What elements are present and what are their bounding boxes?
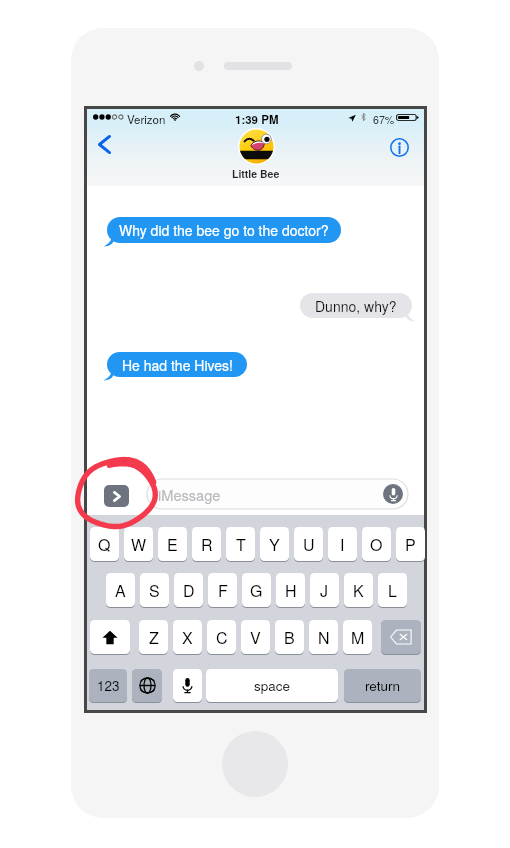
- button[interactable]: E: [158, 527, 187, 561]
- staticText: F: [218, 579, 228, 602]
- button[interactable]: N: [309, 620, 338, 654]
- button[interactable]: Send: [104, 485, 129, 507]
- staticText: U: [303, 533, 315, 556]
- button[interactable]: Q: [90, 527, 119, 561]
- staticText: Dunno, why?: [315, 296, 397, 316]
- button[interactable]: D: [174, 573, 203, 607]
- staticText: S: [149, 579, 160, 602]
- button[interactable]: Home: [222, 731, 288, 797]
- button[interactable]: J: [310, 573, 339, 607]
- staticText: space: [254, 676, 291, 695]
- button[interactable]: O: [362, 527, 391, 561]
- staticText: D: [183, 579, 195, 602]
- staticText: H: [285, 579, 297, 602]
- button[interactable]: T: [226, 527, 255, 561]
- button[interactable]: F: [208, 573, 237, 607]
- staticText: T: [236, 533, 246, 556]
- button[interactable]: H: [276, 573, 305, 607]
- button[interactable]: iMessage: [147, 479, 408, 509]
- button[interactable]: W: [124, 527, 153, 561]
- staticText: L: [388, 579, 397, 602]
- staticText: A: [115, 579, 126, 602]
- button[interactable]: Delete: [381, 620, 421, 654]
- staticText: K: [353, 579, 364, 602]
- staticText: P: [405, 533, 416, 556]
- button[interactable]: I: [328, 527, 357, 561]
- staticText: Y: [269, 533, 280, 556]
- staticText: Q: [98, 533, 111, 556]
- button[interactable]: K: [344, 573, 373, 607]
- staticText: return: [365, 676, 400, 695]
- staticText: I: [340, 533, 345, 556]
- staticText: N: [318, 626, 330, 649]
- staticText: X: [182, 626, 193, 649]
- staticText: B: [284, 626, 295, 649]
- button[interactable]: return: [344, 669, 421, 702]
- button[interactable]: P: [396, 527, 425, 561]
- staticText: 67%: [373, 112, 395, 127]
- staticText: iMessage: [158, 484, 221, 505]
- button[interactable]: L: [378, 573, 407, 607]
- button[interactable]: Y: [260, 527, 289, 561]
- button[interactable]: Dunno, why?: [300, 293, 412, 318]
- staticText: G: [250, 579, 263, 602]
- staticText: Z: [149, 626, 159, 649]
- button[interactable]: V: [241, 620, 270, 654]
- staticText: W: [131, 533, 147, 556]
- button[interactable]: Dictation: [173, 669, 202, 702]
- staticText: He had the Hives!: [122, 355, 233, 375]
- staticText: V: [250, 626, 261, 649]
- staticText: Why did the bee go to the doctor?: [119, 220, 329, 240]
- staticText: Little Bee: [232, 166, 280, 181]
- button[interactable]: C: [207, 620, 236, 654]
- staticText: M: [351, 626, 365, 649]
- button[interactable]: G: [242, 573, 271, 607]
- staticText: R: [201, 533, 213, 556]
- staticText: C: [216, 626, 228, 649]
- button[interactable]: Little Bee: [232, 128, 280, 181]
- button[interactable]: B: [275, 620, 304, 654]
- button[interactable]: U: [294, 527, 323, 561]
- button[interactable]: R: [192, 527, 221, 561]
- button[interactable]: Back: [91, 131, 117, 157]
- button[interactable]: A: [106, 573, 135, 607]
- button[interactable]: Voice message: [383, 484, 403, 504]
- button[interactable]: Shift: [90, 620, 130, 654]
- staticText: 1:39 PM: [235, 111, 279, 127]
- staticText: Verizon: [127, 111, 166, 127]
- button[interactable]: S: [140, 573, 169, 607]
- button[interactable]: Z: [139, 620, 168, 654]
- button[interactable]: space: [206, 669, 338, 702]
- staticText: 123: [97, 676, 120, 695]
- staticText: O: [370, 533, 383, 556]
- button[interactable]: He had the Hives!: [107, 352, 247, 377]
- button[interactable]: M: [343, 620, 372, 654]
- staticText: E: [167, 533, 178, 556]
- button[interactable]: Details: [387, 135, 412, 160]
- button[interactable]: X: [173, 620, 202, 654]
- button[interactable]: 123: [89, 669, 127, 702]
- button[interactable]: Change keyboard: [132, 669, 162, 702]
- button[interactable]: Why did the bee go to the doctor?: [107, 217, 341, 243]
- staticText: J: [320, 579, 329, 602]
